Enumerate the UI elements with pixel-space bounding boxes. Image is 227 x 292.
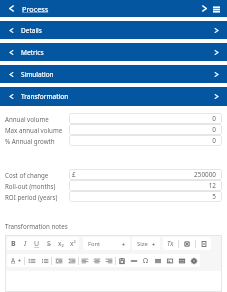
button[interactable]: Transformation xyxy=(0,87,227,106)
button[interactable]: Link xyxy=(128,254,140,267)
staticText: 12 xyxy=(72,181,216,190)
button[interactable]: Text color xyxy=(7,254,24,267)
button[interactable]: Decrease indent xyxy=(52,254,65,267)
button[interactable]: Forward xyxy=(200,4,209,13)
button[interactable]: Details xyxy=(0,21,227,39)
staticText: Roll-out (months) xyxy=(5,182,56,190)
staticText: x₂ xyxy=(58,239,64,248)
staticText: Metrics xyxy=(21,48,44,57)
staticText: I xyxy=(24,239,27,249)
button[interactable]: Size xyxy=(132,237,160,250)
button[interactable]: Subscript xyxy=(55,237,67,250)
button[interactable]: 0 xyxy=(69,113,222,124)
button[interactable]: £ xyxy=(69,169,222,180)
staticText: 0 xyxy=(72,125,216,134)
button[interactable]: Paste xyxy=(116,254,128,267)
staticText: x² xyxy=(70,239,76,248)
button[interactable]: Remove format xyxy=(163,237,178,250)
staticText: A xyxy=(11,256,16,265)
staticText: £ xyxy=(72,170,76,179)
staticText: Transformation xyxy=(21,92,69,101)
button[interactable]: Maximize xyxy=(179,237,195,250)
button[interactable]: Italic xyxy=(19,237,31,250)
button[interactable]: Bold xyxy=(7,237,19,250)
button[interactable]: Menu xyxy=(211,4,221,14)
staticText: 0 xyxy=(72,136,216,145)
button[interactable]: 12 xyxy=(69,180,222,191)
button[interactable]: Process xyxy=(22,4,49,14)
button[interactable]: Underline xyxy=(31,237,43,250)
staticText: Annual volume xyxy=(5,115,49,123)
button[interactable]: Align center xyxy=(91,254,103,267)
staticText: % Annual growth xyxy=(5,137,55,145)
staticText: Transformation notes xyxy=(5,222,68,230)
button[interactable]: Bulleted list xyxy=(38,254,51,267)
button[interactable]: Settings xyxy=(188,254,200,267)
button[interactable]: 0 xyxy=(69,124,222,135)
button[interactable]: Align right xyxy=(103,254,115,267)
button[interactable]: Source xyxy=(196,237,211,250)
button[interactable]: Numbered list xyxy=(25,254,38,267)
button[interactable]: Table xyxy=(176,254,188,267)
button[interactable]: Strikethrough xyxy=(43,237,55,250)
staticText: ROI period (years) xyxy=(5,193,58,201)
button[interactable]: 0 xyxy=(69,135,222,146)
staticText: Size xyxy=(137,240,148,248)
button[interactable]: Horizontal rule xyxy=(152,254,164,267)
staticText: Details xyxy=(21,26,42,35)
staticText: Simulation xyxy=(21,70,54,79)
staticText: 0 xyxy=(72,114,216,123)
staticText: Max annual volume xyxy=(5,126,63,134)
button[interactable]: Special character xyxy=(140,254,152,267)
staticText: Tx xyxy=(167,239,174,248)
staticText: B xyxy=(11,239,16,249)
staticText: S xyxy=(47,239,51,249)
staticText: 250000 xyxy=(76,170,216,179)
staticText: Ω xyxy=(143,256,149,266)
staticText: 5 xyxy=(72,192,216,201)
button[interactable]: Back xyxy=(7,4,16,13)
button[interactable]: Simulation xyxy=(0,65,227,83)
button[interactable]: Superscript xyxy=(67,237,79,250)
button[interactable]: 5 xyxy=(69,191,222,202)
staticText: Cost of change xyxy=(5,171,49,179)
staticText: U xyxy=(34,239,40,249)
button[interactable]: Align left xyxy=(79,254,91,267)
staticText: Font xyxy=(88,240,101,248)
button[interactable]: Metrics xyxy=(0,43,227,61)
button[interactable]: Font xyxy=(83,237,130,250)
button[interactable]: Image xyxy=(164,254,176,267)
button[interactable]: Increase indent xyxy=(65,254,78,267)
